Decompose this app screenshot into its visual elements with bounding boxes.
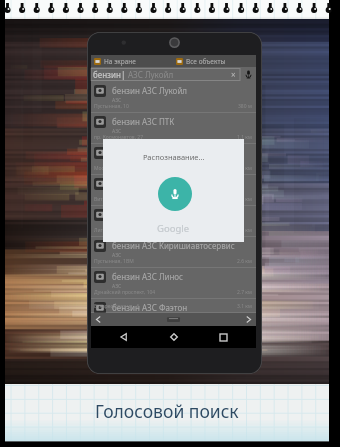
staticText: Google	[157, 222, 190, 235]
staticText: Пустынная, 10	[94, 103, 129, 110]
button[interactable]: Home	[157, 326, 191, 348]
staticText: бензин АЗС Линос	[112, 271, 184, 282]
button[interactable]: На экране	[91, 55, 173, 67]
staticText: Голосовой поиск	[95, 399, 239, 423]
staticText: АЗС Лукойл	[128, 69, 174, 80]
staticText: АЗС	[112, 97, 122, 104]
button[interactable]: Все объекты	[173, 55, 256, 67]
staticText: бензин АЗС Шелл	[112, 209, 181, 220]
staticText: пр. Космонавтов, 27	[94, 134, 144, 141]
button[interactable]: Back	[107, 326, 141, 348]
button[interactable]: Microphone	[158, 177, 192, 211]
staticText: бензин АЗС Лукойл	[112, 85, 188, 96]
button[interactable]: бензин АЗС ПТК	[91, 113, 256, 144]
staticText: 380 м	[238, 103, 252, 110]
button[interactable]: Next	[245, 316, 252, 323]
staticText: Пустынная, 1ВМ	[94, 258, 134, 265]
staticText: АЗС	[112, 283, 122, 290]
staticText: 3.1 км	[237, 303, 252, 310]
staticText: 1.4 км	[237, 165, 252, 172]
staticText: Все объекты	[186, 57, 226, 66]
staticText: бензин АЗС ПТК	[112, 116, 175, 127]
staticText: Распознавание...	[143, 152, 205, 162]
staticText: ×	[231, 69, 236, 80]
button[interactable]: Voice search	[244, 70, 253, 79]
staticText: 2.0 км	[237, 227, 252, 234]
staticText: Витебский пр., 11	[94, 196, 137, 203]
staticText: Бухарестская ул., 6	[94, 303, 140, 310]
staticText: бензин АЗС Фаэтон	[112, 302, 188, 313]
button[interactable]: бензин АЗС Несте	[91, 144, 256, 175]
button[interactable]: бензин АЗС Киришиавтосервис	[91, 237, 256, 268]
staticText: 1.1 км	[237, 134, 252, 141]
button[interactable]: бензин АЗС Лукойл	[91, 82, 256, 113]
button[interactable]: бензин АЗС Шелл	[91, 206, 256, 237]
button[interactable]: Recents	[206, 326, 240, 348]
staticText: бензин АЗС Киришиавтосервис	[112, 240, 235, 251]
staticText: 2.6 км	[237, 258, 252, 265]
button[interactable]: Previous	[95, 316, 102, 323]
staticText: Дунайский проспект, 104	[94, 289, 156, 296]
staticText: На экране	[104, 57, 136, 66]
staticText: бензин АЗС Газпром	[112, 178, 192, 189]
staticText: бензин|	[93, 69, 126, 80]
staticText: Лиговский пр., 203	[94, 227, 140, 234]
staticText: 1.8 км	[237, 196, 252, 203]
staticText: бензин АЗС Несте	[112, 147, 182, 158]
staticText: Московский пр., 141	[94, 165, 144, 172]
staticText: 2.7 км	[237, 289, 252, 296]
button[interactable]: бензин АЗС Фаэтон	[91, 299, 256, 313]
button[interactable]: бензин АЗС Газпром	[91, 175, 256, 206]
button[interactable]: бензин АЗС Линос	[91, 268, 256, 299]
button[interactable]: бензин|	[91, 67, 241, 82]
staticText: АЗС	[112, 252, 122, 259]
staticText: АЗС	[112, 128, 122, 135]
